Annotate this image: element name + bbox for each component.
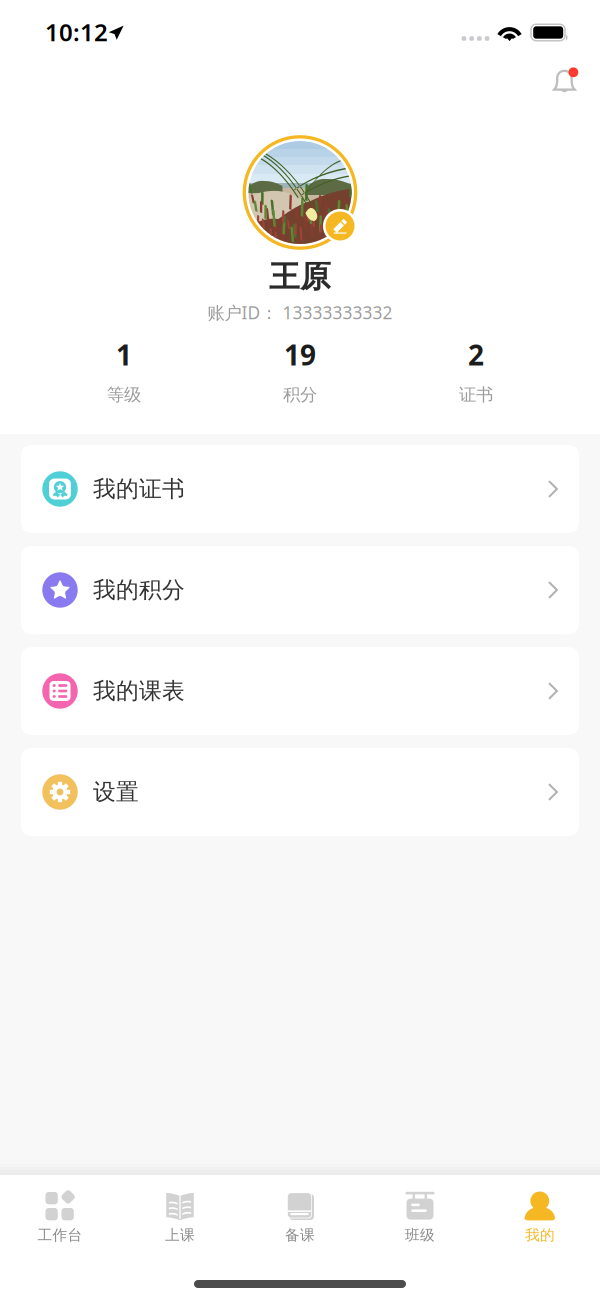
staticText: 2: [468, 336, 484, 373]
staticText: 我的课表: [93, 677, 185, 705]
staticText: 10:12: [45, 16, 108, 48]
staticText: 工作台: [37, 1226, 82, 1244]
staticText: 我的证书: [93, 475, 185, 503]
staticText: 班级: [405, 1226, 435, 1244]
button[interactable]: 上课: [120, 1175, 240, 1251]
button[interactable]: 我的积分: [21, 546, 579, 634]
staticText: 1: [116, 336, 132, 373]
button[interactable]: 工作台: [0, 1175, 120, 1251]
button[interactable]: 我的课表: [21, 647, 579, 735]
staticText: 账户ID： 13333333332: [207, 301, 392, 324]
staticText: 我的: [525, 1226, 555, 1244]
button[interactable]: 我的: [480, 1175, 600, 1251]
button[interactable]: 班级: [360, 1175, 480, 1251]
staticText: 积分: [283, 384, 317, 405]
staticText: 等级: [107, 384, 141, 405]
button[interactable]: 设置: [21, 748, 579, 836]
button[interactable]: Edit profile photo: [323, 209, 357, 243]
button[interactable]: Notifications: [544, 60, 585, 100]
staticText: 备课: [285, 1226, 315, 1244]
staticText: 设置: [93, 778, 139, 806]
button[interactable]: 备课: [240, 1175, 360, 1251]
staticText: 19: [284, 336, 316, 373]
button[interactable]: 我的证书: [21, 445, 579, 533]
staticText: 上课: [165, 1226, 195, 1244]
staticText: 王原: [269, 258, 331, 296]
staticText: 证书: [459, 384, 493, 405]
staticText: 我的积分: [93, 576, 185, 604]
